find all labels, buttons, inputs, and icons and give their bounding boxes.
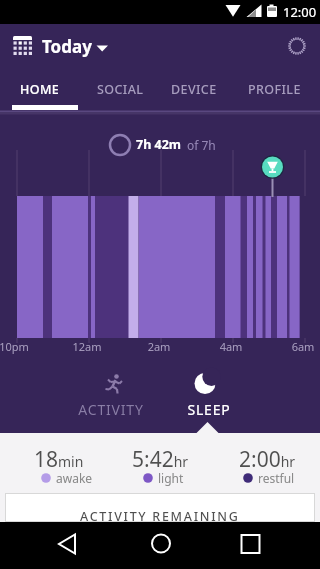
button[interactable]: DEVICE xyxy=(158,68,230,110)
staticText: 10pm xyxy=(0,339,31,354)
staticText: Today xyxy=(42,35,92,58)
button[interactable] xyxy=(287,36,307,56)
button[interactable]: SOCIAL xyxy=(84,68,156,110)
staticText: ACTIVITY REMAINING xyxy=(80,508,240,525)
button[interactable] xyxy=(10,33,36,59)
staticText: DEVICE xyxy=(171,81,217,98)
staticText: of 7h xyxy=(187,137,216,153)
button[interactable] xyxy=(192,371,218,397)
staticText: SLEEP xyxy=(169,400,249,419)
button[interactable] xyxy=(102,373,126,397)
staticText: PROFILE xyxy=(248,81,301,98)
staticText: SOCIAL xyxy=(97,81,144,98)
staticText: 5:42hr xyxy=(132,445,189,474)
staticText: 2am xyxy=(144,339,174,354)
staticText: 2:00hr xyxy=(239,445,296,474)
staticText: 6am xyxy=(288,339,318,354)
button[interactable]: ACTIVITY xyxy=(71,400,151,419)
button[interactable]: PROFILE xyxy=(236,68,312,110)
button[interactable]: HOME xyxy=(8,68,72,110)
staticText: 4am xyxy=(216,339,246,354)
staticText: light xyxy=(158,470,184,486)
button[interactable] xyxy=(55,531,79,555)
staticText: 12:00 xyxy=(283,3,317,21)
staticText: restful xyxy=(258,470,295,486)
staticText: 12am xyxy=(70,339,104,354)
button[interactable]: Today xyxy=(42,35,108,58)
button[interactable]: ACTIVITY REMAINING xyxy=(5,493,315,522)
button[interactable]: SLEEP xyxy=(169,400,249,419)
staticText: 7h 42m xyxy=(136,136,182,153)
staticText: awake xyxy=(56,470,93,486)
staticText: HOME xyxy=(20,81,60,98)
button[interactable] xyxy=(149,531,173,555)
staticText: ACTIVITY xyxy=(71,400,151,419)
button[interactable] xyxy=(238,531,262,555)
staticText: 18min xyxy=(34,445,84,474)
